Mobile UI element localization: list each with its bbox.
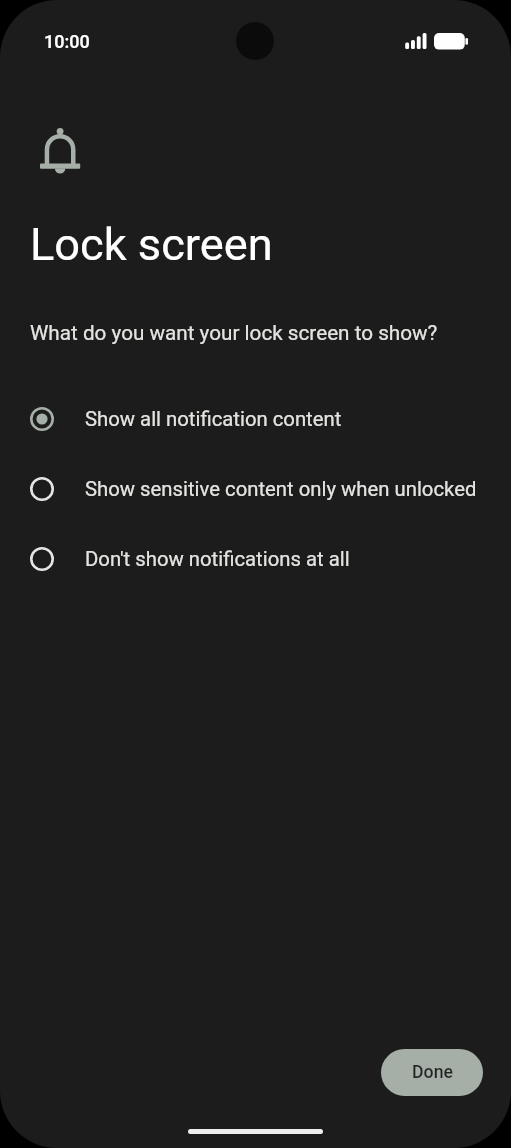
staticText: Show all notification content	[85, 407, 342, 431]
staticText: Lock screen	[30, 218, 273, 271]
staticText: Show sensitive content only when unlocke…	[85, 477, 477, 501]
other: Notifications	[40, 128, 82, 178]
button[interactable]: Done	[381, 1049, 483, 1096]
button[interactable]: Show sensitive content only when unlocke…	[0, 465, 511, 513]
staticText: What do you want your lock screen to sho…	[30, 321, 438, 345]
staticText: Done	[412, 1062, 453, 1083]
other: Mobile signal	[405, 33, 427, 50]
button[interactable]: Don't show notifications at all	[0, 535, 511, 583]
other: Battery full	[434, 33, 468, 50]
staticText: 10:00	[44, 31, 90, 52]
staticText: Don't show notifications at all	[85, 547, 350, 571]
button[interactable]: Show all notification content	[0, 395, 511, 443]
